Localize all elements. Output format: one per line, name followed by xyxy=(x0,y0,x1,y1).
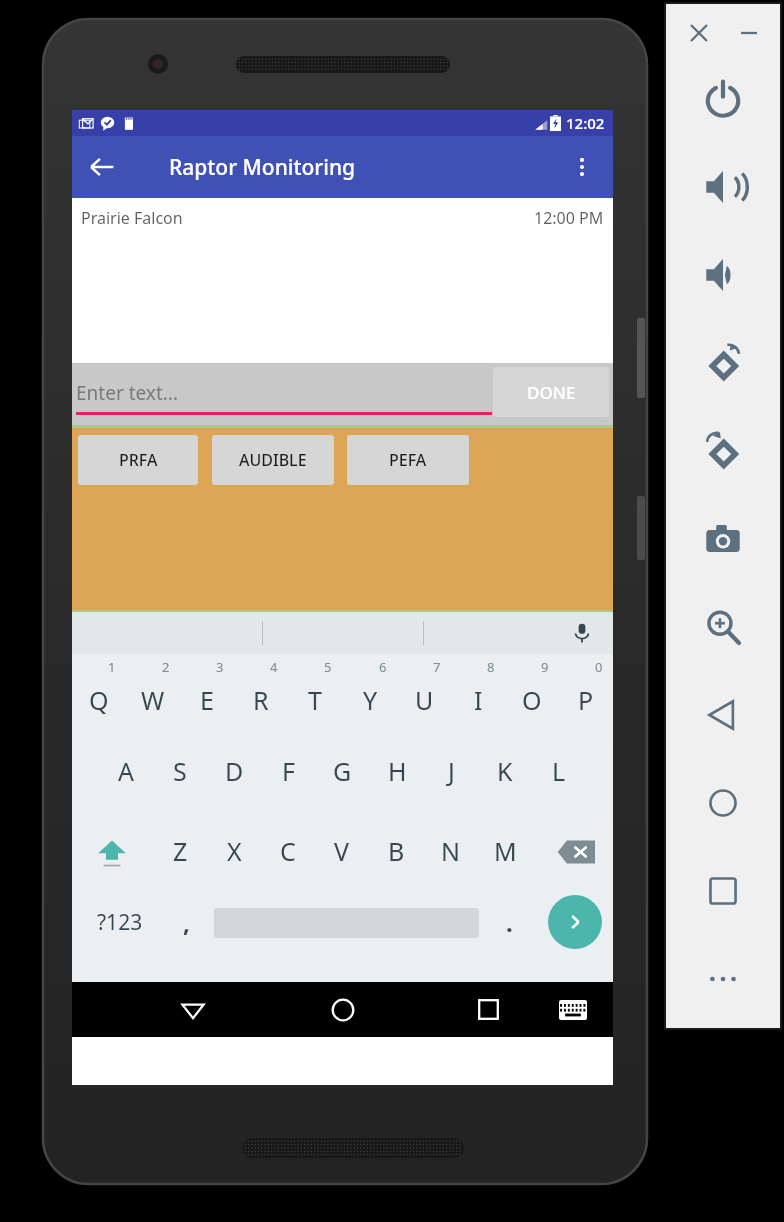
button[interactable]: R xyxy=(234,654,288,732)
button[interactable]: J xyxy=(424,732,478,810)
staticText: L xyxy=(552,754,566,788)
button[interactable]: PEFA xyxy=(347,435,469,485)
button[interactable]: PRFA xyxy=(78,435,198,485)
button[interactable]: Back xyxy=(686,678,760,752)
button[interactable]: ?123 xyxy=(82,892,158,952)
button[interactable]: Y xyxy=(343,654,397,732)
button[interactable]: More xyxy=(696,952,750,1006)
button[interactable]: Power xyxy=(686,62,760,136)
staticText: . xyxy=(506,906,513,939)
button[interactable]: Switch keyboard xyxy=(542,982,604,1037)
staticText: DONE xyxy=(527,381,576,404)
button[interactable]: Back xyxy=(162,982,224,1037)
button[interactable]: Zoom xyxy=(686,590,760,664)
staticText: 2 xyxy=(162,658,170,676)
staticText: 5 xyxy=(324,658,332,676)
button[interactable]: DONE xyxy=(493,367,609,417)
button[interactable]: Rotate right xyxy=(686,414,760,488)
staticText: S xyxy=(173,754,187,788)
button[interactable]: P xyxy=(559,654,613,732)
button[interactable]: B xyxy=(369,812,423,890)
staticText: P xyxy=(578,683,594,717)
staticText: G xyxy=(333,754,352,788)
staticText: 8 xyxy=(487,658,495,676)
staticText: I xyxy=(474,683,483,717)
button[interactable]: Volume up xyxy=(686,150,760,224)
staticText: Prairie Falcon xyxy=(81,207,183,229)
staticText: 4 xyxy=(270,658,278,676)
button[interactable]: AUDIBLE xyxy=(212,435,334,485)
staticText: A xyxy=(118,754,134,788)
staticText: O xyxy=(522,683,542,717)
staticText: , xyxy=(183,906,190,939)
button[interactable]: Back xyxy=(78,143,126,191)
button[interactable]: , xyxy=(162,892,210,952)
button[interactable]: N xyxy=(424,812,478,890)
button[interactable]: D xyxy=(207,732,261,810)
button[interactable]: Minimize xyxy=(730,14,768,52)
button[interactable]: I xyxy=(451,654,505,732)
button[interactable]: Recents xyxy=(457,982,519,1037)
staticText: J xyxy=(448,754,455,788)
staticText: U xyxy=(415,683,434,717)
button[interactable]: G xyxy=(315,732,369,810)
button[interactable]: . xyxy=(485,892,533,952)
staticText: V xyxy=(334,834,350,868)
button[interactable]: M xyxy=(478,812,532,890)
staticText: X xyxy=(227,834,242,868)
staticText: 12:00 PM xyxy=(534,207,604,229)
button[interactable]: Rotate left xyxy=(686,326,760,400)
staticText: T xyxy=(308,683,322,717)
button[interactable]: O xyxy=(505,654,559,732)
button[interactable]: Enter xyxy=(548,895,602,949)
button[interactable]: Volume down xyxy=(686,238,760,312)
staticText: Raptor Monitoring xyxy=(169,153,356,182)
staticText: W xyxy=(141,683,165,717)
staticText: ?123 xyxy=(97,908,143,937)
button[interactable]: Screenshot xyxy=(686,502,760,576)
button[interactable]: Enter text... xyxy=(76,374,492,412)
staticText: C xyxy=(280,834,296,868)
button[interactable]: A xyxy=(99,732,153,810)
button[interactable]: L xyxy=(532,732,586,810)
button[interactable]: Q xyxy=(72,654,126,732)
staticText: 1 xyxy=(108,658,116,676)
staticText: Q xyxy=(89,683,109,717)
staticText: D xyxy=(225,754,244,788)
button[interactable]: T xyxy=(288,654,342,732)
button[interactable]: H xyxy=(370,732,424,810)
button[interactable]: S xyxy=(153,732,207,810)
staticText: E xyxy=(200,683,214,717)
button[interactable]: C xyxy=(261,812,315,890)
staticText: 6 xyxy=(379,658,387,676)
staticText: K xyxy=(497,754,513,788)
button[interactable]: E xyxy=(180,654,234,732)
staticText: 7 xyxy=(433,658,441,676)
button[interactable]: V xyxy=(315,812,369,890)
staticText: Y xyxy=(363,683,378,717)
button[interactable]: Home xyxy=(686,766,760,840)
button[interactable]: Shift xyxy=(80,812,144,892)
staticText: 0 xyxy=(595,658,603,676)
staticText: 3 xyxy=(216,658,224,676)
button[interactable]: X xyxy=(207,812,261,890)
button[interactable]: Close xyxy=(680,14,718,52)
staticText: M xyxy=(494,834,517,868)
staticText: Z xyxy=(173,834,188,868)
button[interactable]: W xyxy=(126,654,180,732)
staticText: F xyxy=(282,754,295,788)
button[interactable]: Overview xyxy=(686,854,760,928)
staticText: N xyxy=(441,834,461,868)
button[interactable]: Backspace xyxy=(544,812,608,892)
staticText: H xyxy=(388,754,407,788)
button[interactable]: More options xyxy=(558,143,606,191)
button[interactable]: K xyxy=(478,732,532,810)
button[interactable]: U xyxy=(397,654,451,732)
staticText: B xyxy=(388,834,405,868)
staticText: PRFA xyxy=(119,449,158,471)
button[interactable]: F xyxy=(261,732,315,810)
button[interactable]: Voice input xyxy=(565,616,599,650)
button[interactable]: Z xyxy=(153,812,207,890)
button[interactable]: Home xyxy=(312,982,374,1037)
